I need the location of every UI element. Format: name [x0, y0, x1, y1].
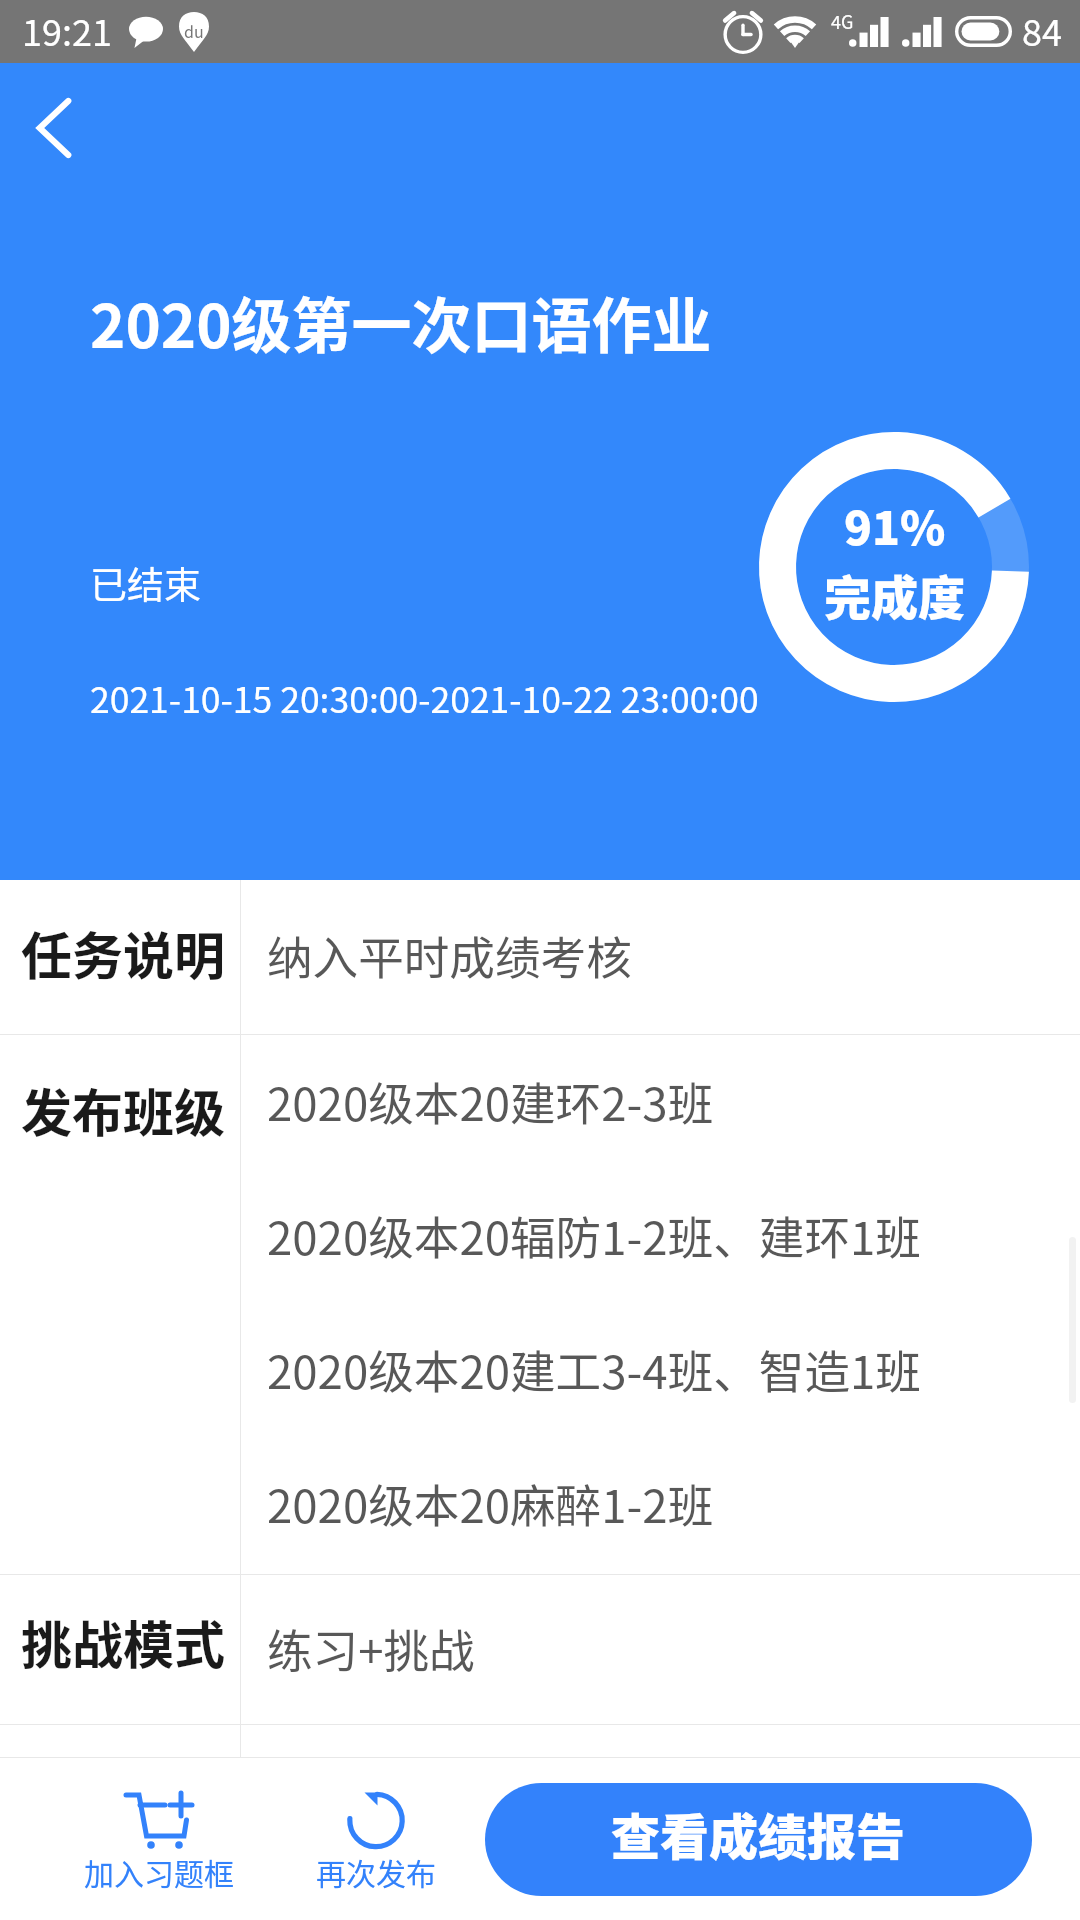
staticText: 2020级本20建工3-4班、智造1班 — [267, 1336, 921, 1402]
staticText: du — [184, 19, 204, 42]
staticText: 2021-10-15 20:30:00-2021-10-22 23:00:00 — [90, 672, 759, 723]
staticText: 挑战模式 — [21, 1605, 226, 1679]
staticText: 19:21 — [22, 4, 112, 56]
button[interactable]: 再次发布 — [288, 1758, 464, 1920]
button[interactable]: 加入习题框 — [64, 1758, 254, 1920]
staticText: 完成度 — [824, 560, 965, 628]
staticText: 2020级第一次口语作业 — [90, 278, 712, 365]
staticText: 2020级本20建环2-3班 — [267, 1068, 714, 1134]
staticText: 纳入平时成绩考核 — [267, 922, 632, 988]
button[interactable]: Back — [14, 88, 94, 168]
staticText: 2020级本20辐防1-2班、建环1班 — [267, 1202, 921, 1268]
staticText: 练习+挑战 — [267, 1615, 475, 1681]
staticText: 91% — [844, 492, 946, 559]
staticText: 4G — [831, 8, 854, 34]
staticText: 发布班级 — [21, 1073, 226, 1147]
button[interactable]: 查看成绩报告 — [485, 1783, 1032, 1896]
staticText: 再次发布 — [316, 1850, 436, 1893]
staticText: 2020级本20麻醉1-2班 — [267, 1470, 714, 1536]
staticText: 加入习题框 — [84, 1850, 234, 1893]
staticText: 查看成绩报告 — [611, 1798, 906, 1869]
staticText: 84 — [1022, 4, 1062, 56]
staticText: 已结束 — [90, 556, 201, 610]
staticText: 任务说明 — [21, 916, 226, 990]
